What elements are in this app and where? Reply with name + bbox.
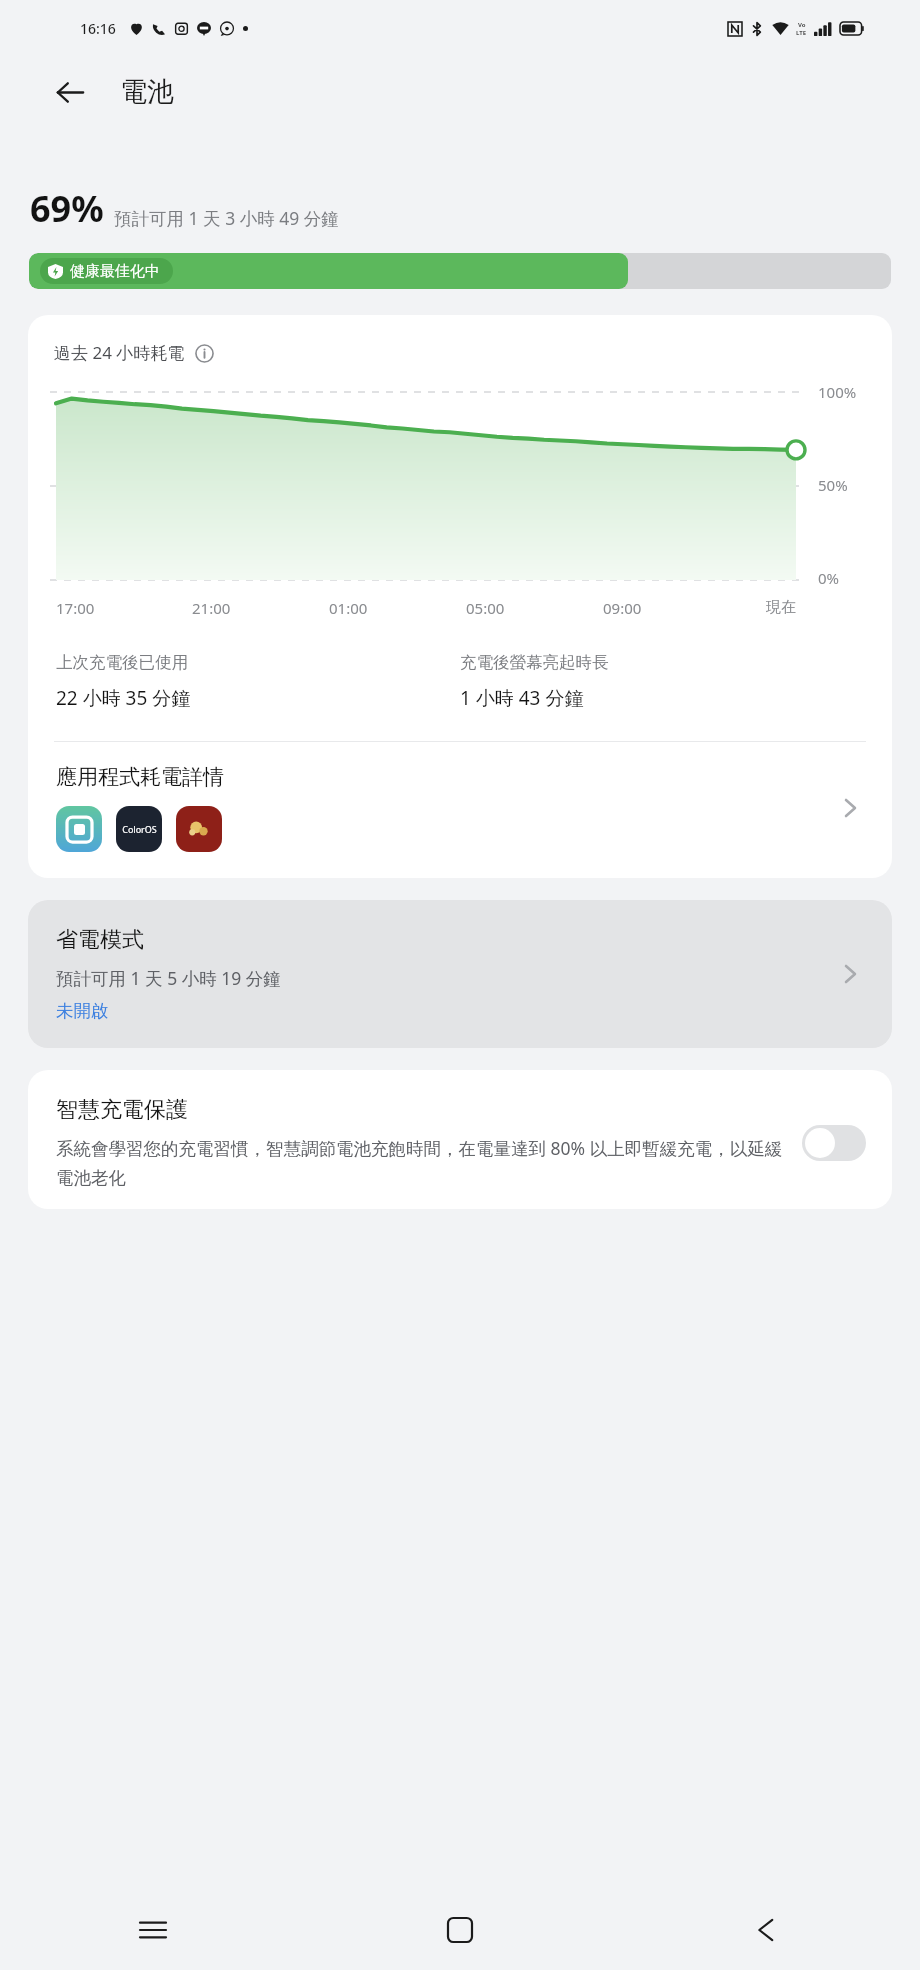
staticText: 上次充電後已使用: [56, 652, 188, 673]
staticText: 09:00: [603, 598, 642, 618]
staticText: LTE: [796, 29, 807, 37]
staticText: 系統會學習您的充電習慣，智慧調節電池充飽時間，在電量達到 80% 以上即暫緩充電…: [56, 1136, 784, 1189]
button[interactable]: Recents: [121, 1898, 185, 1962]
staticText: Vo: [798, 21, 806, 29]
staticText: 過去 24 小時耗電: [54, 341, 185, 364]
staticText: 0%: [818, 568, 840, 588]
staticText: 省電模式: [56, 926, 144, 954]
other: Open app battery details: [830, 788, 870, 828]
staticText: 智慧充電保護: [56, 1096, 188, 1124]
staticText: 預計可用 1 天 3 小時 49 分鐘: [114, 206, 339, 230]
other: Open app battery details: [830, 954, 870, 994]
staticText: 應用程式耗電詳情: [56, 764, 224, 790]
button[interactable]: 省電模式: [28, 900, 892, 1048]
button[interactable]: Back: [44, 66, 96, 118]
staticText: 充電後螢幕亮起時長: [460, 652, 609, 673]
staticText: 21:00: [192, 598, 231, 618]
staticText: 健康最佳化中: [70, 262, 160, 281]
button[interactable]: Smart charging toggle: [802, 1125, 866, 1161]
staticText: 05:00: [466, 598, 505, 618]
staticText: 17:00: [56, 598, 95, 618]
staticText: 100%: [818, 382, 857, 402]
button[interactable]: Info: [194, 343, 214, 363]
button[interactable]: Home: [428, 1898, 492, 1962]
staticText: 電池: [120, 75, 174, 109]
staticText: 01:00: [329, 598, 368, 618]
staticText: 22 小時 35 分鐘: [56, 685, 191, 711]
staticText: 69%: [30, 184, 104, 233]
staticText: 現在: [766, 598, 796, 617]
staticText: 16:16: [80, 19, 116, 38]
staticText: 未開啟: [56, 1000, 109, 1022]
button[interactable]: 應用程式耗電詳情: [28, 742, 892, 878]
button[interactable]: Back: [735, 1898, 799, 1962]
staticText: ColorOS: [122, 823, 157, 835]
staticText: 50%: [818, 475, 848, 495]
staticText: 預計可用 1 天 5 小時 19 分鐘: [56, 966, 281, 990]
staticText: 1 小時 43 分鐘: [460, 685, 584, 711]
